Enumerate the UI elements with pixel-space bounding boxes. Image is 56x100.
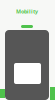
staticText: Mobility <box>16 8 38 15</box>
